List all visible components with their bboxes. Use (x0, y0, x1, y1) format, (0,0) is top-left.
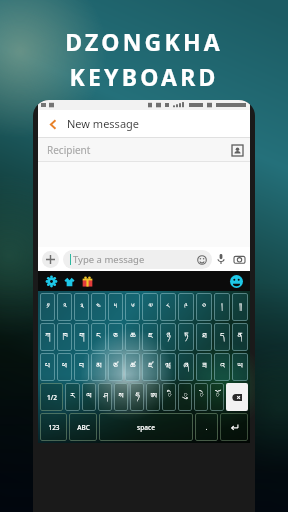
button[interactable]: ཀ (40, 323, 55, 351)
button[interactable]: ཧ (130, 383, 144, 411)
button[interactable]: ༦ (125, 293, 140, 321)
staticText: ཁ (62, 327, 68, 348)
staticText: 1/2 (47, 393, 57, 402)
button[interactable]: ༎ (232, 293, 248, 321)
staticText: པ (45, 357, 50, 378)
button[interactable]: མ (91, 353, 106, 381)
button[interactable]: 123 (40, 413, 67, 441)
staticText: ཧ (135, 387, 140, 408)
button[interactable]: Type a message (63, 250, 212, 269)
button[interactable]: ཝ (160, 353, 176, 381)
button[interactable]: ད (214, 323, 230, 351)
staticText: ༦ (131, 298, 135, 316)
button[interactable]: Add contact (228, 141, 246, 159)
button[interactable]: . (195, 413, 218, 441)
button[interactable]: ༤ (91, 293, 106, 321)
button[interactable]: ༧ (142, 293, 158, 321)
staticText: ཛ (148, 357, 153, 378)
button[interactable]: ཁ (57, 323, 72, 351)
staticText: ད (220, 327, 225, 348)
staticText: བ (79, 357, 84, 378)
staticText: 123 (48, 423, 60, 432)
staticText: . (205, 422, 208, 432)
staticText: ག (79, 327, 85, 348)
staticText: ABC (77, 423, 90, 432)
button[interactable]: ༣ (74, 293, 89, 321)
button[interactable]: ང (91, 323, 106, 351)
button[interactable]: ༩ (178, 293, 194, 321)
button[interactable]: Camera (230, 250, 248, 268)
button[interactable]: ན (232, 323, 248, 351)
button[interactable]: space (99, 413, 193, 441)
button[interactable]: ABC (69, 413, 97, 441)
staticText: ༎ (239, 298, 242, 316)
button[interactable]: ར (65, 383, 80, 411)
staticText: ང (96, 327, 101, 348)
button[interactable]: ས (114, 383, 128, 411)
button[interactable]: ཨ (146, 383, 160, 411)
staticText: ོ (215, 387, 220, 408)
button[interactable]: 1/2 (40, 383, 63, 411)
button[interactable]: ། (214, 293, 230, 321)
button[interactable]: ཟ (196, 353, 212, 381)
button[interactable]: ཆ (125, 323, 140, 351)
button[interactable]: Back (44, 115, 62, 133)
button[interactable]: ེ (194, 383, 208, 411)
button[interactable]: ཞ (178, 353, 194, 381)
button[interactable]: ཤ (98, 383, 112, 411)
button[interactable]: ༥ (108, 293, 123, 321)
button[interactable]: ཉ (160, 323, 176, 351)
staticText: ༢ (63, 298, 67, 316)
staticText: space (137, 423, 155, 432)
button[interactable]: པ (40, 353, 55, 381)
staticText: ཀ (45, 327, 51, 348)
button[interactable]: ཐ (196, 323, 212, 351)
staticText: Type a message (73, 253, 145, 266)
button[interactable]: Backspace (226, 383, 248, 411)
staticText: ཨ (150, 387, 157, 408)
button[interactable]: ༢ (57, 293, 72, 321)
staticText: ན (237, 327, 243, 348)
button[interactable]: ༨ (160, 293, 176, 321)
button[interactable]: ཏ (178, 323, 194, 351)
staticText: ༡ (46, 298, 50, 316)
button[interactable]: Emoji keyboard (227, 272, 245, 290)
button[interactable]: ཅ (108, 323, 123, 351)
staticText: ༣ (80, 298, 84, 316)
staticText: ། (221, 298, 223, 316)
button[interactable]: ཕ (57, 353, 72, 381)
staticText: ཇ (148, 327, 153, 348)
button[interactable]: Themes (61, 273, 77, 289)
staticText: ཆ (130, 327, 136, 348)
button[interactable]: ི (162, 383, 176, 411)
staticText: ༤ (96, 298, 101, 316)
button[interactable]: བ (74, 353, 89, 381)
button[interactable]: ༡ (40, 293, 55, 321)
button[interactable]: Gift (79, 273, 95, 289)
button[interactable]: ལ (82, 383, 96, 411)
staticText: ལ (86, 387, 92, 408)
button[interactable]: ཙ (108, 353, 123, 381)
button[interactable]: ོ (210, 383, 224, 411)
button[interactable]: ུ (178, 383, 192, 411)
staticText: ེ (199, 387, 204, 408)
staticText: New message (67, 116, 140, 131)
button[interactable]: ཚ (125, 353, 140, 381)
button[interactable]: Settings (43, 273, 59, 289)
button[interactable]: ཡ (232, 353, 248, 381)
button[interactable]: ཇ (142, 323, 158, 351)
staticText: ཏ (184, 327, 189, 348)
button[interactable]: ༠ (196, 293, 212, 321)
staticText: མ (96, 357, 102, 378)
staticText: ༧ (148, 298, 153, 316)
button[interactable]: འ (214, 353, 230, 381)
button[interactable]: ག (74, 323, 89, 351)
button[interactable]: Voice message (212, 250, 230, 268)
button[interactable]: Recipient (38, 138, 250, 161)
staticText: ཅ (113, 327, 118, 348)
button[interactable]: Add attachment (42, 251, 59, 268)
staticText: འ (220, 357, 225, 378)
button[interactable]: Emoji (194, 252, 210, 268)
button[interactable]: Enter (220, 413, 248, 441)
button[interactable]: ཛ (142, 353, 158, 381)
